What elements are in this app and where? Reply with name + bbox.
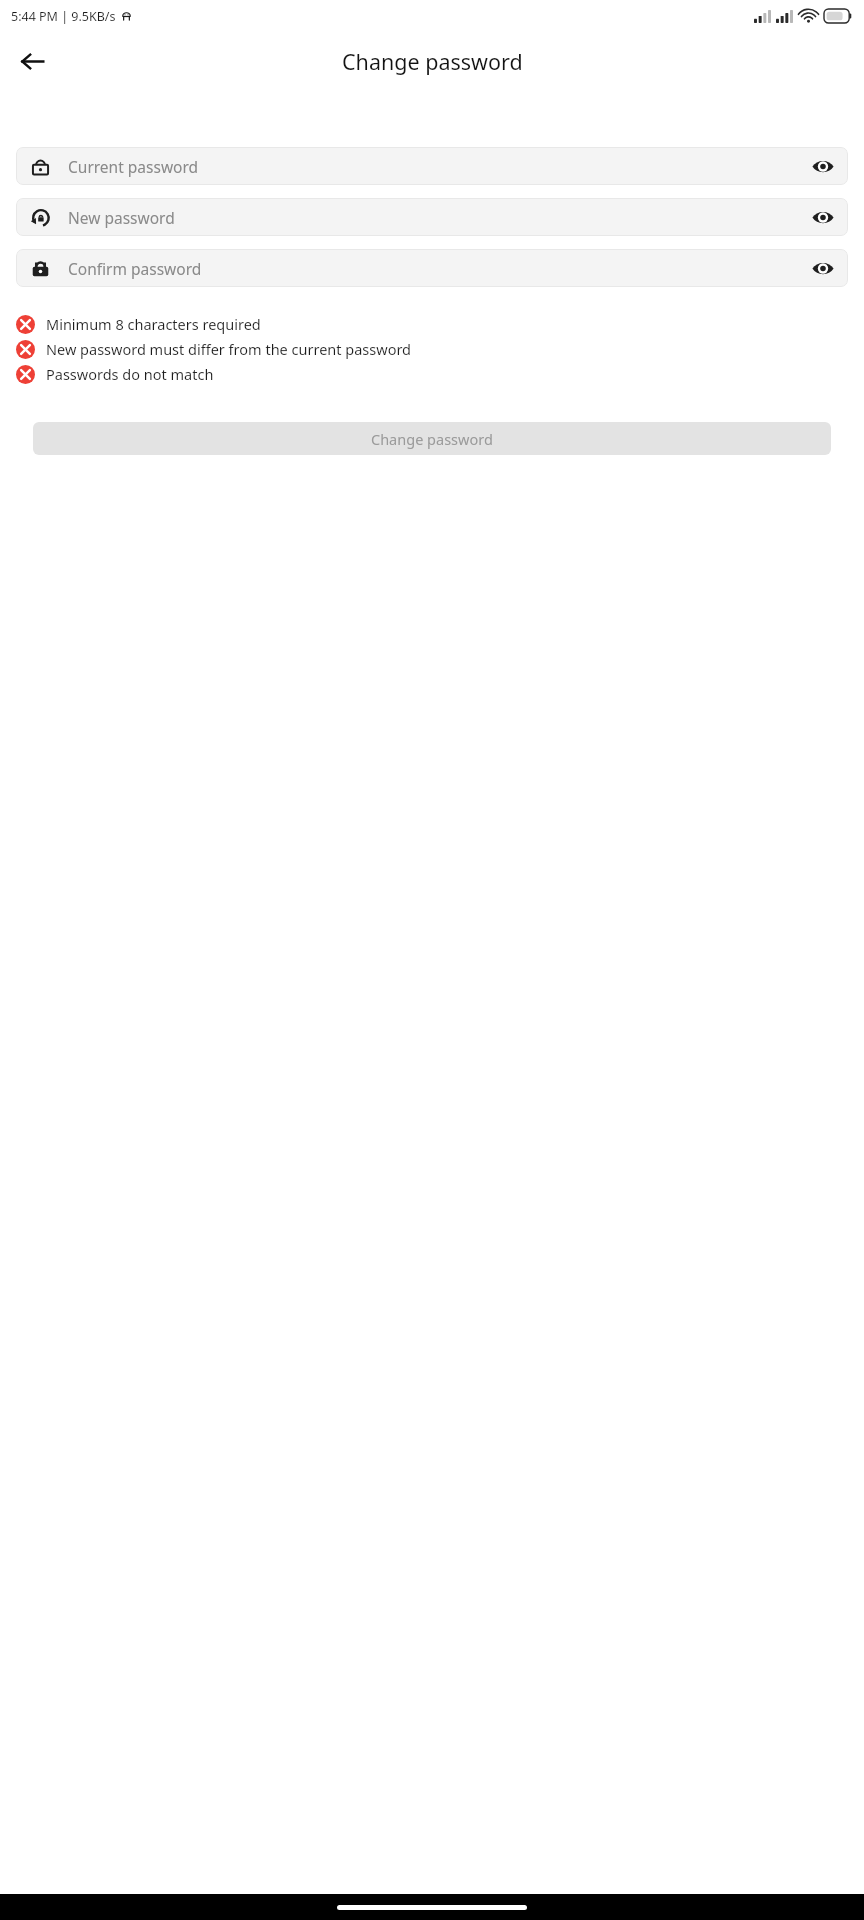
button[interactable]: Show password	[804, 198, 842, 236]
staticText: Change password	[342, 47, 523, 76]
button[interactable]: Back	[8, 37, 56, 85]
button[interactable]: New password	[16, 198, 848, 236]
staticText: Minimum 8 characters required	[46, 314, 261, 334]
staticText: Change password	[371, 429, 493, 449]
staticText: Confirm password	[68, 258, 804, 279]
button[interactable]: Show password	[804, 249, 842, 287]
staticText: Current password	[68, 156, 804, 177]
staticText: New password must differ from the curren…	[46, 339, 412, 359]
button[interactable]: Change password	[33, 422, 831, 455]
staticText: Passwords do not match	[46, 364, 214, 384]
staticText: New password	[68, 207, 804, 228]
button[interactable]: Show password	[804, 147, 842, 185]
staticText: 5:44 PM | 9.5KB/s	[11, 8, 116, 25]
button[interactable]: Current password	[16, 147, 848, 185]
button[interactable]: Confirm password	[16, 249, 848, 287]
